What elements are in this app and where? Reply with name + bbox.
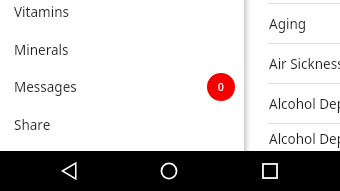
button[interactable]: Messages: [0, 68, 244, 105]
button[interactable]: Back: [46, 151, 94, 191]
staticText: Alcohol Dependence: [269, 130, 340, 148]
staticText: 0: [218, 80, 224, 94]
staticText: Air Sickness: [269, 55, 340, 73]
staticText: Alcohol Dependence: [269, 95, 340, 113]
button[interactable]: Home: [145, 151, 193, 191]
button[interactable]: Recent apps: [246, 151, 294, 191]
staticText: Messages: [14, 78, 77, 96]
staticText: Share: [14, 116, 51, 134]
button[interactable]: Minerals: [0, 31, 244, 68]
button[interactable]: Alcohol Dependence: [251, 84, 340, 123]
staticText: Minerals: [14, 41, 69, 59]
button[interactable]: Air Sickness: [251, 44, 340, 83]
button[interactable]: Alcohol Dependence: [251, 124, 340, 154]
button[interactable]: Share: [0, 106, 244, 143]
staticText: Vitamins: [14, 3, 69, 21]
button[interactable]: Vitamins: [0, 0, 244, 30]
button[interactable]: Aging: [251, 4, 340, 43]
staticText: Aging: [269, 15, 307, 33]
